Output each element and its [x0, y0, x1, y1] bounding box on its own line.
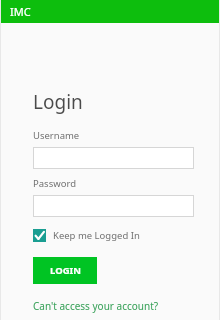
staticText: Login — [33, 89, 83, 115]
button[interactable]: Text input field — [33, 147, 194, 169]
staticText: Username — [33, 129, 80, 142]
staticText: Password — [33, 177, 76, 190]
button[interactable]: LOGIN — [33, 257, 97, 284]
button[interactable]: Text input field — [33, 195, 194, 217]
staticText: LOGIN — [50, 264, 81, 277]
staticText: IMC — [10, 4, 31, 19]
button[interactable]: Can't access your account? — [33, 299, 159, 313]
button[interactable]: Keep me Logged In — [33, 227, 140, 244]
staticText: Keep me Logged In — [53, 229, 140, 242]
